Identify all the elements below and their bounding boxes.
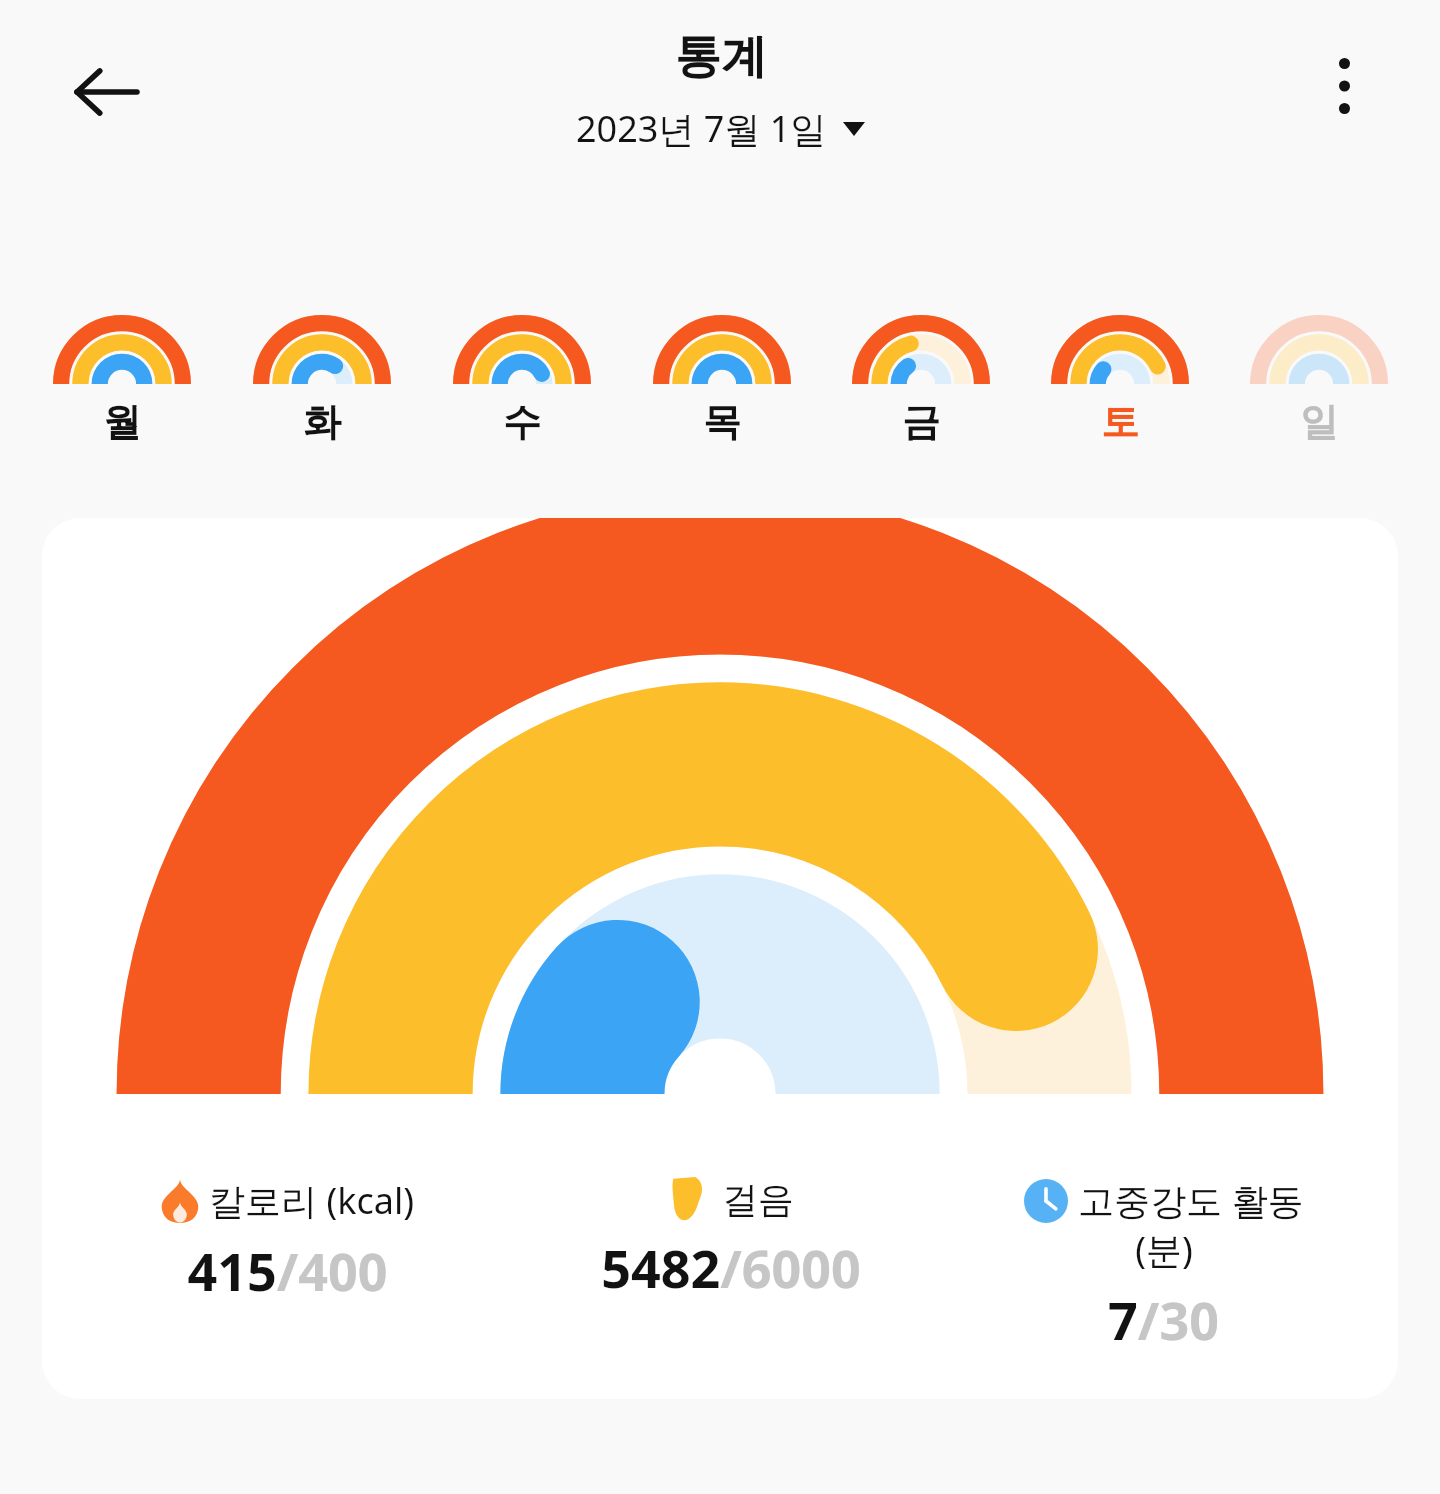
- button[interactable]: 칼로리 (kcal): [60, 1172, 514, 1310]
- button[interactable]: 수: [422, 304, 622, 452]
- staticText: 토: [1101, 398, 1139, 446]
- staticText: 통계: [675, 28, 767, 86]
- staticText: 7/30: [1108, 1284, 1219, 1355]
- staticText: 화: [303, 398, 341, 446]
- staticText: 5482/6000: [601, 1232, 861, 1303]
- button[interactable]: 2023년 7월 1일: [566, 100, 875, 157]
- button[interactable]: More options: [1294, 36, 1394, 136]
- button[interactable]: 화: [222, 304, 422, 452]
- button[interactable]: 걸음: [514, 1172, 947, 1307]
- button[interactable]: 일: [1219, 304, 1418, 452]
- staticText: 일: [1300, 398, 1338, 446]
- button[interactable]: 토: [1020, 304, 1219, 452]
- button[interactable]: 목: [622, 304, 821, 452]
- button[interactable]: 월: [22, 304, 222, 452]
- staticText: 2023년 7월 1일: [576, 104, 827, 153]
- staticText: (분): [1135, 1225, 1193, 1274]
- staticText: 수: [503, 398, 541, 446]
- button[interactable]: Back: [56, 42, 156, 142]
- staticText: 걸음: [722, 1177, 794, 1222]
- staticText: 415/400: [187, 1235, 388, 1306]
- staticText: 금: [902, 398, 940, 446]
- button[interactable]: 칼로리 (kcal): [42, 518, 1398, 1399]
- staticText: 칼로리 (kcal): [209, 1176, 414, 1225]
- button[interactable]: 금: [821, 304, 1020, 452]
- staticText: 목: [703, 398, 741, 446]
- staticText: 고중강도 활동: [1078, 1176, 1304, 1225]
- staticText: 월: [103, 398, 141, 446]
- button[interactable]: 고중강도 활동: [947, 1172, 1380, 1359]
